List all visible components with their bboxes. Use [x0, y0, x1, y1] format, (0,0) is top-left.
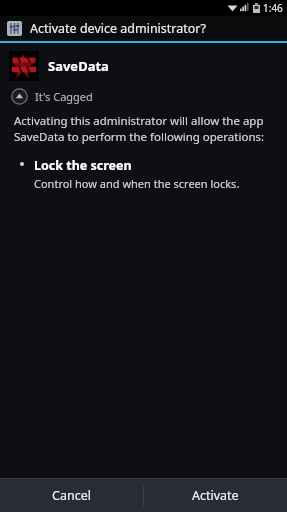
other: Collapse details	[11, 88, 28, 105]
button[interactable]: Collapse details	[0, 86, 287, 107]
staticText: Activate	[192, 487, 239, 504]
button[interactable]: Cancel	[0, 479, 143, 512]
staticText: Control how and when the screen locks.	[34, 176, 240, 191]
staticText: Cancel	[52, 487, 91, 504]
staticText: It's Cagged	[35, 89, 93, 104]
staticText: Activate device administrator?	[30, 20, 206, 37]
staticText: Activating this administrator will allow…	[14, 113, 273, 144]
staticText: 1:46	[263, 1, 283, 15]
button[interactable]: Activate	[144, 479, 287, 512]
staticText: Lock the screen	[34, 157, 132, 174]
staticText: SaveData	[48, 57, 109, 75]
